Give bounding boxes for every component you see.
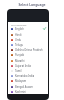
staticText: Hindi — [15, 33, 22, 37]
button[interactable]: Bengali Assam — [8, 84, 48, 89]
staticText: Urdu — [15, 38, 22, 42]
button[interactable]: Marathi — [8, 58, 48, 63]
staticText: Malayam — [15, 79, 27, 83]
other: Selected — [43, 27, 46, 30]
staticText: Set Language — [11, 23, 27, 26]
staticText: Bengali Assam — [15, 85, 33, 89]
button[interactable]: Malayam — [8, 78, 48, 83]
button[interactable]: English — [8, 26, 48, 31]
staticText: Odisha Orissa Pradesh — [15, 48, 43, 52]
staticText: Tamil — [15, 69, 22, 73]
button[interactable]: Hindi — [8, 32, 48, 37]
button[interactable]: Punjabi — [8, 52, 48, 57]
staticText: Gujarat India — [15, 64, 31, 68]
button[interactable]: Gujarat India — [8, 63, 48, 68]
button[interactable]: Odisha Orissa Pradesh — [8, 47, 48, 52]
staticText: Karnataka India — [15, 74, 35, 78]
button[interactable]: Kashmiri — [8, 89, 48, 94]
staticText: Telugu — [15, 43, 24, 47]
button[interactable]: Telugu — [8, 42, 48, 47]
button[interactable]: Karnataka India — [8, 73, 48, 78]
staticText: English — [15, 27, 24, 31]
staticText: Marathi — [15, 59, 25, 63]
button[interactable]: Tamil — [8, 68, 48, 73]
staticText: Punjabi — [15, 53, 25, 57]
staticText: Select Language — [0, 2, 64, 7]
button[interactable]: Urdu — [8, 37, 48, 42]
staticText: Kashmiri — [15, 90, 26, 94]
